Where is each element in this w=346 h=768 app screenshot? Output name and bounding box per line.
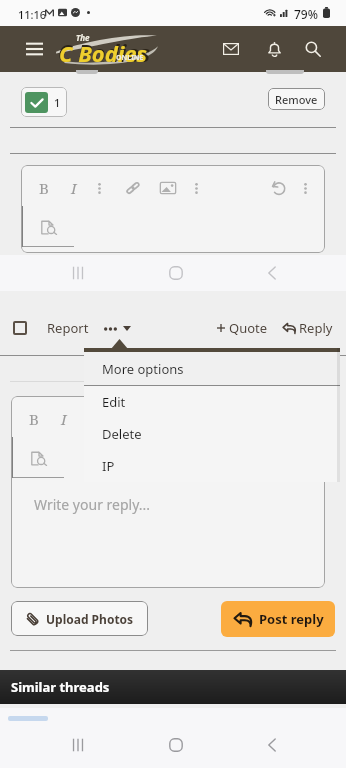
staticText: Write your reply... — [34, 495, 151, 514]
button[interactable]: Recents — [60, 255, 96, 291]
button[interactable]: Quote — [212, 312, 272, 344]
staticText: C Bodies — [59, 38, 148, 68]
staticText: Reply — [299, 319, 333, 337]
button[interactable]: Report — [42, 312, 94, 344]
button[interactable]: Delete — [84, 418, 340, 450]
button[interactable]: Recents — [60, 727, 96, 763]
button[interactable]: More options — [98, 312, 136, 344]
staticText: IP — [102, 457, 115, 475]
staticText: Remove — [275, 92, 318, 107]
staticText: Quote — [229, 319, 268, 337]
button[interactable]: Post reply — [221, 601, 335, 637]
staticText: I — [61, 409, 67, 429]
button[interactable]: Edit — [84, 386, 340, 418]
staticText: The — [76, 32, 90, 43]
staticText: I — [71, 178, 77, 198]
staticText: Edit — [102, 393, 126, 411]
button[interactable]: Home — [158, 255, 194, 291]
button[interactable]: Home — [158, 727, 194, 763]
button[interactable]: Back — [254, 255, 290, 291]
staticText: Report — [47, 319, 89, 337]
staticText: Upload Photos — [46, 611, 134, 627]
button[interactable]: Remove — [268, 88, 325, 110]
button[interactable]: Inbox — [211, 29, 251, 69]
staticText: Similar threads — [11, 678, 110, 696]
button[interactable]: Reply — [278, 312, 337, 344]
button[interactable]: Select post — [6, 314, 34, 342]
button[interactable]: Upload Photos — [11, 601, 148, 636]
staticText: 1 — [54, 95, 61, 110]
staticText: B — [29, 409, 39, 429]
staticText: More options — [102, 360, 184, 378]
button[interactable]: More options — [84, 352, 340, 385]
staticText: C Bodies — [58, 37, 151, 68]
staticText: ONLINE — [116, 53, 144, 63]
button[interactable]: Search — [293, 29, 333, 69]
button[interactable]: Back — [254, 727, 290, 763]
button[interactable]: Menu — [12, 27, 56, 71]
staticText: B — [39, 178, 49, 198]
staticText: 11:16 — [18, 7, 47, 22]
button[interactable]: Notifications — [254, 29, 294, 69]
staticText: Post reply — [259, 610, 324, 628]
button[interactable]: 1 — [21, 87, 67, 117]
staticText: 79% — [294, 6, 318, 22]
staticText: Delete — [102, 425, 142, 443]
button[interactable]: IP — [84, 450, 340, 482]
